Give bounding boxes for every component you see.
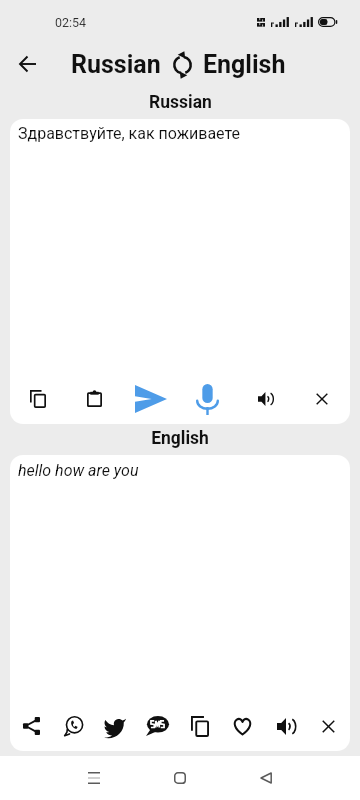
button[interactable]: English xyxy=(203,50,286,79)
button[interactable]: WhatsApp xyxy=(52,701,94,751)
button[interactable]: Voice input xyxy=(179,374,236,424)
button[interactable]: Clear xyxy=(293,374,350,424)
button[interactable]: Favorite xyxy=(221,701,264,751)
button[interactable]: Swap languages xyxy=(170,53,194,77)
button[interactable]: Clear xyxy=(307,701,350,751)
button[interactable]: Copy xyxy=(10,374,66,424)
button[interactable]: Back xyxy=(245,757,287,799)
button[interactable]: Back xyxy=(6,48,48,80)
button[interactable]: Home xyxy=(159,757,201,799)
button[interactable]: Speak xyxy=(236,374,293,424)
button[interactable]: Share xyxy=(10,701,52,751)
button[interactable]: Twitter xyxy=(94,701,136,751)
staticText: hello how are you xyxy=(18,461,139,480)
button[interactable]: Recents xyxy=(73,757,115,799)
staticText: 02:54 xyxy=(55,15,87,30)
staticText: Russian xyxy=(149,92,212,113)
staticText: Здравствуйте, как поживаете xyxy=(18,124,241,143)
button[interactable]: Paste xyxy=(66,374,122,424)
button[interactable]: Speak xyxy=(264,701,307,751)
button[interactable]: Russian xyxy=(71,50,161,79)
button[interactable]: Copy xyxy=(178,701,221,751)
button[interactable]: Translate xyxy=(122,374,179,424)
button[interactable]: SMS xyxy=(136,701,178,751)
staticText: English xyxy=(151,428,209,449)
